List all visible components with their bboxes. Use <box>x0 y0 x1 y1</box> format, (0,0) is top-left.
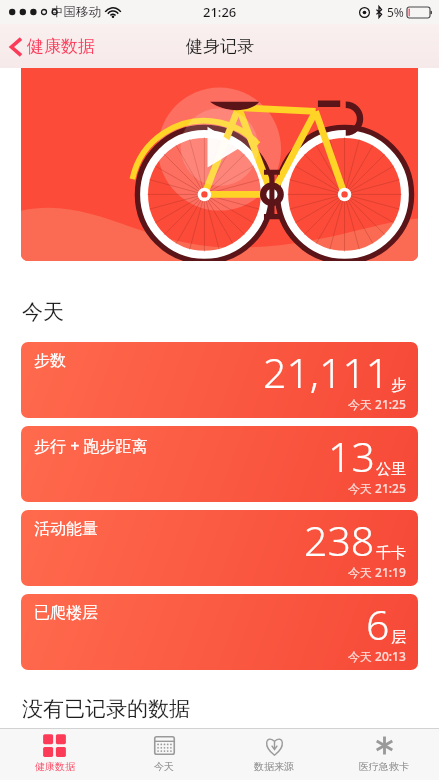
staticText: 中国移动 <box>51 4 101 20</box>
staticText: 公里 <box>376 460 406 479</box>
staticText: 健身记录 <box>186 36 254 57</box>
staticText: 6 <box>366 596 390 652</box>
staticText: 13 <box>328 428 375 484</box>
staticText: 步 <box>391 376 406 395</box>
staticText: 21:26 <box>203 3 237 21</box>
staticText: 活动能量 <box>34 519 98 539</box>
button[interactable]: 步数 <box>21 342 418 418</box>
staticText: 层 <box>391 628 406 647</box>
button[interactable]: Play workout video <box>21 68 418 261</box>
staticText: 今天 21:19 <box>348 564 406 580</box>
staticText: 健康数据 <box>27 36 95 57</box>
button[interactable]: 已爬楼层 <box>21 594 418 670</box>
staticText: 238 <box>304 512 375 568</box>
staticText: 步行 + 跑步距离 <box>34 435 148 457</box>
staticText: 没有已记录的数据 <box>22 696 190 722</box>
staticText: 健康数据 <box>35 760 75 773</box>
staticText: 千卡 <box>376 544 406 563</box>
staticText: 今天 <box>22 299 64 325</box>
staticText: 步数 <box>34 351 66 371</box>
staticText: 今天 <box>154 760 174 773</box>
button[interactable]: 健康数据 <box>0 30 107 63</box>
button[interactable]: 医疗急救卡 <box>329 729 439 780</box>
staticText: 今天 21:25 <box>348 480 406 496</box>
staticText: 今天 21:25 <box>348 396 406 412</box>
staticText: 医疗急救卡 <box>359 760 409 773</box>
button[interactable]: 数据来源 <box>219 729 329 780</box>
button[interactable]: 活动能量 <box>21 510 418 586</box>
staticText: 数据来源 <box>254 760 294 773</box>
button[interactable]: 今天 <box>109 729 219 780</box>
staticText: 今天 20:13 <box>348 648 406 664</box>
staticText: 已爬楼层 <box>34 603 98 623</box>
button[interactable]: 步行 + 跑步距离 <box>21 426 418 502</box>
button[interactable]: 健康数据 <box>0 729 109 780</box>
staticText: 5% <box>387 4 404 20</box>
staticText: 21,111 <box>263 344 390 400</box>
